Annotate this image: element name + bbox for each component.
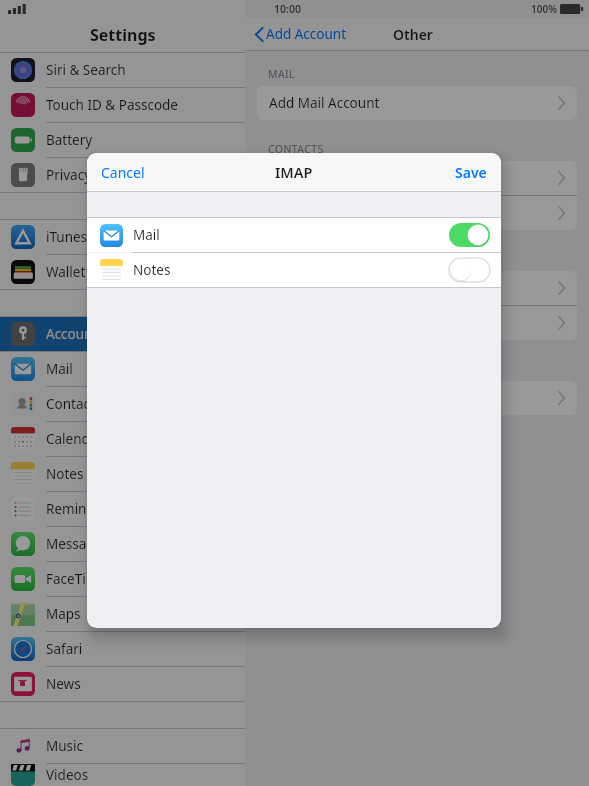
staticText: CALENDARS	[268, 252, 331, 266]
staticText: Music	[46, 737, 84, 755]
staticText: 10:00	[274, 2, 301, 16]
button[interactable]	[257, 271, 577, 305]
staticText: Save	[455, 163, 487, 182]
staticText: Messages	[46, 535, 109, 553]
staticText: Maps	[46, 605, 81, 623]
button[interactable]: Siri & Search	[0, 53, 245, 88]
staticText: 100%	[531, 2, 557, 16]
staticText: CONTACTS	[268, 142, 324, 156]
staticText: Safari	[46, 640, 83, 658]
button[interactable]: Videos	[0, 764, 245, 786]
staticText: Wallet & Apple Pay	[46, 263, 165, 281]
staticText: Add Account	[266, 25, 347, 43]
button[interactable]: Calendar	[0, 422, 245, 457]
button[interactable]: Back to Add Account	[255, 25, 347, 43]
button[interactable]: Maps	[0, 597, 245, 632]
button[interactable]	[257, 161, 577, 195]
button[interactable]	[257, 196, 577, 230]
staticText: Siri & Search	[46, 61, 126, 79]
staticText: Other	[393, 25, 433, 44]
staticText: Contacts	[46, 395, 102, 413]
staticText: Settings	[90, 24, 156, 46]
staticText: Privacy	[46, 166, 92, 184]
button[interactable]: News	[0, 667, 245, 702]
staticText: MAIL	[268, 67, 295, 81]
button[interactable]: Add Mail Account	[257, 86, 577, 120]
button[interactable]: Save	[441, 155, 501, 190]
button[interactable]: Contacts	[0, 387, 245, 422]
staticText: Videos	[46, 766, 89, 784]
button[interactable]	[257, 306, 577, 340]
button[interactable]: Mail	[0, 352, 245, 387]
button[interactable]: Notes	[87, 253, 501, 287]
button[interactable]: Wallet & Apple Pay	[0, 255, 245, 290]
staticText: Mail	[46, 360, 73, 378]
staticText: Add Mail Account	[269, 94, 380, 112]
staticText: Cancel	[101, 163, 145, 182]
button[interactable]: Battery	[0, 123, 245, 158]
staticText: Reminders	[46, 500, 115, 518]
staticText: IMAP	[275, 162, 313, 182]
staticText: Notes	[46, 465, 84, 483]
staticText: Accounts	[46, 325, 104, 343]
button[interactable]: FaceTime	[0, 562, 245, 597]
button[interactable]: Safari	[0, 632, 245, 667]
button[interactable]: Accounts	[0, 317, 245, 352]
staticText: Notes	[133, 261, 171, 279]
button[interactable]: Messages	[0, 527, 245, 562]
staticText: Calendar	[46, 430, 103, 448]
staticText: News	[46, 675, 81, 693]
button[interactable]	[257, 381, 577, 415]
button[interactable]: iTunes	[0, 220, 245, 255]
button[interactable]: Reminders	[0, 492, 245, 527]
staticText: Battery	[46, 131, 93, 149]
button[interactable]: Touch ID & Passcode	[0, 88, 245, 123]
staticText: iTunes	[46, 228, 88, 246]
button[interactable]: Notes	[0, 457, 245, 492]
staticText: Mail	[133, 226, 160, 244]
staticText: Touch ID & Passcode	[46, 96, 178, 114]
button[interactable]: Cancel	[87, 155, 159, 190]
button[interactable]: Privacy	[0, 158, 245, 193]
button[interactable]: Music	[0, 729, 245, 764]
button[interactable]: Mail	[87, 218, 501, 252]
staticText: FaceTime	[46, 570, 106, 588]
